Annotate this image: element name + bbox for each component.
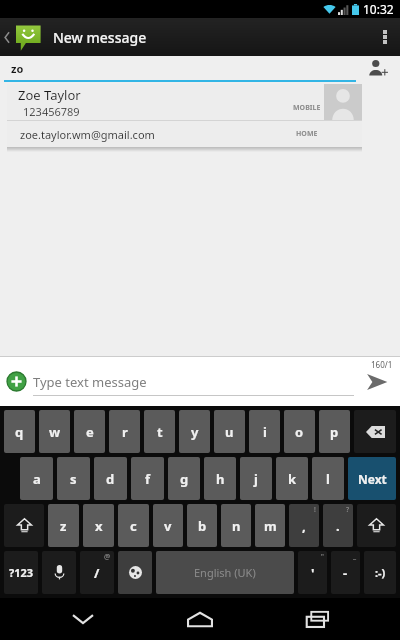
button[interactable]: k [276, 457, 308, 500]
staticText: v [164, 517, 172, 535]
staticText: Next [358, 471, 387, 487]
button[interactable]: q [4, 410, 35, 453]
button[interactable]: Delete [354, 410, 396, 453]
button[interactable]: b [187, 504, 217, 547]
staticText: z [60, 517, 67, 535]
button[interactable]: Space [156, 551, 294, 594]
staticText: / [94, 564, 100, 582]
staticText: - [343, 564, 348, 582]
button[interactable]: l [312, 457, 344, 500]
button[interactable]: h [204, 457, 236, 500]
button[interactable]: Type text message [33, 368, 354, 395]
button[interactable]: m [255, 504, 285, 547]
staticText: r [122, 423, 128, 441]
button[interactable]: Next [348, 457, 396, 500]
button[interactable]: Recent apps [283, 598, 353, 640]
button[interactable]: j [240, 457, 272, 500]
button[interactable]: p [319, 410, 350, 453]
staticText: g [180, 470, 189, 488]
button[interactable]: zo [0, 56, 356, 80]
staticText: l [326, 470, 330, 488]
button[interactable]: n [221, 504, 251, 547]
staticText: x [95, 517, 103, 535]
button[interactable]: . [323, 504, 353, 547]
staticText: HOME [296, 129, 318, 139]
staticText: ?123 [9, 565, 34, 580]
button[interactable]: Change language [118, 551, 152, 594]
staticText: c [130, 517, 137, 535]
staticText: m [264, 517, 277, 535]
button[interactable]: ' [298, 551, 327, 594]
staticText: ' [311, 564, 315, 582]
staticText: q [15, 423, 24, 441]
button[interactable]: s [57, 457, 90, 500]
button[interactable]: , [289, 504, 319, 547]
staticText: , [302, 517, 306, 535]
staticText: e [86, 423, 94, 441]
button[interactable]: g [168, 457, 200, 500]
button[interactable]: y [179, 410, 210, 453]
staticText: i [263, 423, 267, 441]
staticText: a [33, 470, 41, 488]
button[interactable]: v [153, 504, 183, 547]
staticText: w [49, 423, 61, 441]
staticText: New message [53, 28, 147, 47]
button[interactable]: x [83, 504, 114, 547]
button[interactable]: Zoe Taylor [7, 84, 362, 120]
staticText: zo [11, 61, 24, 76]
button[interactable]: Add attachment [0, 357, 33, 406]
staticText: k [288, 470, 297, 488]
button[interactable]: a [20, 457, 53, 500]
staticText: . [336, 517, 340, 535]
button[interactable]: f [131, 457, 164, 500]
staticText: ! [314, 505, 316, 515]
staticText: u [225, 423, 234, 441]
button[interactable]: z [48, 504, 79, 547]
button[interactable]: w [39, 410, 70, 453]
button[interactable]: i [249, 410, 280, 453]
button[interactable]: / [80, 551, 114, 594]
button[interactable]: More options [370, 18, 400, 56]
button[interactable]: Send [354, 357, 400, 406]
button[interactable]: c [118, 504, 149, 547]
button[interactable]: Add recipient from contacts [356, 56, 400, 80]
button[interactable]: - [331, 551, 360, 594]
button[interactable]: Navigate up [0, 22, 45, 52]
staticText: _ [353, 552, 357, 562]
button[interactable]: t [144, 410, 175, 453]
button[interactable]: r [109, 410, 140, 453]
staticText: zoe.taylor.wm@gmail.com [20, 127, 155, 142]
staticText: j [254, 470, 258, 488]
staticText: h [216, 470, 225, 488]
button[interactable]: d [94, 457, 127, 500]
button[interactable]: u [214, 410, 245, 453]
staticText: @ [104, 552, 111, 562]
button[interactable]: o [284, 410, 315, 453]
staticText: 160/1 [371, 359, 393, 370]
staticText: ? [346, 505, 350, 515]
button[interactable]: zoe.taylor.wm@gmail.com [7, 121, 362, 147]
button[interactable]: Hide keyboard [48, 598, 118, 640]
staticText: 123456789 [23, 104, 80, 119]
button[interactable]: Shift [357, 504, 396, 547]
button[interactable]: e [74, 410, 105, 453]
staticText: t [157, 423, 163, 441]
staticText: Zoe Taylor [18, 86, 81, 104]
button[interactable]: :-) [364, 551, 396, 594]
button[interactable]: Shift [4, 504, 44, 547]
staticText: o [295, 423, 304, 441]
staticText: :-) [375, 565, 386, 580]
staticText: s [70, 470, 77, 488]
staticText: MOBILE [293, 103, 321, 113]
staticText: n [232, 517, 241, 535]
button[interactable]: Voice input [42, 551, 76, 594]
staticText: 10:32 [363, 1, 394, 17]
staticText: d [106, 470, 115, 488]
staticText: b [198, 517, 207, 535]
staticText: p [330, 423, 339, 441]
staticText: English (UK) [194, 565, 256, 580]
button[interactable]: Home [165, 598, 235, 640]
button[interactable]: ?123 [4, 551, 38, 594]
staticText: Type text message [33, 373, 147, 391]
staticText: " [321, 552, 324, 562]
